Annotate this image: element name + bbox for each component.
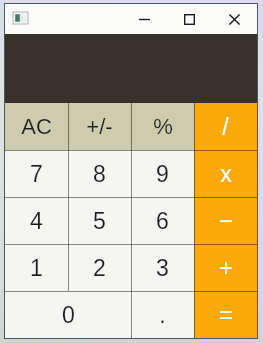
staticText: 9	[156, 161, 169, 187]
staticText: .	[159, 302, 166, 328]
staticText: 7	[30, 161, 43, 187]
button[interactable]: Close	[212, 4, 257, 34]
button[interactable]: .	[131, 291, 194, 338]
button[interactable]: −	[194, 197, 257, 244]
button[interactable]: 9	[131, 150, 194, 197]
button[interactable]: 3	[131, 244, 194, 291]
staticText: 2	[93, 255, 106, 281]
button[interactable]: +/-	[68, 103, 131, 150]
button[interactable]: 6	[131, 197, 194, 244]
staticText: 1	[30, 255, 43, 281]
button[interactable]: 4	[5, 197, 68, 244]
button[interactable]: AC	[5, 103, 68, 150]
button[interactable]: =	[194, 291, 257, 338]
staticText: 3	[156, 255, 169, 281]
staticText: =	[219, 302, 233, 328]
button[interactable]: 2	[68, 244, 131, 291]
button[interactable]: Minimize	[122, 4, 167, 34]
staticText: 6	[156, 208, 169, 234]
button[interactable]: /	[194, 103, 257, 150]
staticText: 5	[93, 208, 106, 234]
staticText: +	[219, 255, 233, 281]
staticText: x	[220, 161, 232, 187]
button[interactable]: 0	[5, 291, 131, 338]
staticText: AC	[21, 114, 52, 139]
staticText: +/-	[86, 114, 113, 139]
staticText: %	[153, 114, 173, 139]
button[interactable]: 5	[68, 197, 131, 244]
button[interactable]: x	[194, 150, 257, 197]
staticText: 8	[93, 161, 106, 187]
staticText: 4	[30, 208, 43, 234]
staticText: 0	[62, 302, 75, 328]
button[interactable]: +	[194, 244, 257, 291]
button[interactable]: 8	[68, 150, 131, 197]
button[interactable]: 1	[5, 244, 68, 291]
button[interactable]: 7	[5, 150, 68, 197]
staticText: /	[222, 114, 229, 140]
button[interactable]: Maximize	[167, 4, 212, 34]
button[interactable]: %	[131, 103, 194, 150]
other: Calculator icon	[13, 12, 28, 24]
staticText: −	[219, 208, 233, 234]
